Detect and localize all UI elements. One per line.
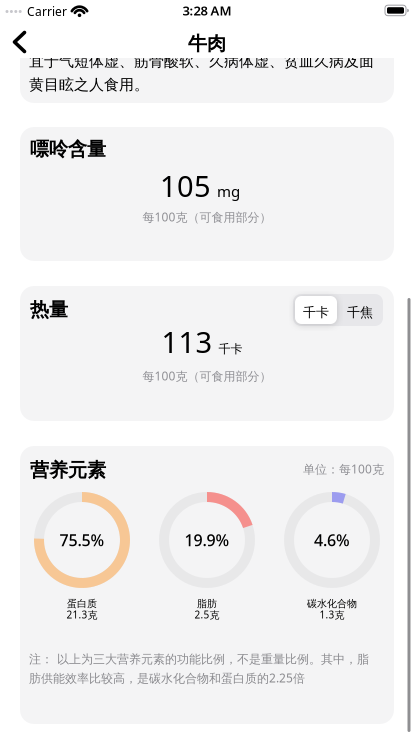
- staticText: 4.6%: [314, 529, 350, 551]
- staticText: 牛肉: [188, 32, 226, 55]
- button[interactable]: 千卡: [295, 296, 337, 324]
- staticText: mg: [217, 181, 240, 201]
- button[interactable]: 千焦: [337, 296, 383, 324]
- staticText: 肪供能效率比较高，是碳水化合物和蛋白质的2.25倍: [29, 670, 305, 686]
- staticText: 105: [160, 166, 211, 205]
- staticText: 113: [161, 322, 212, 361]
- staticText: 脂肪: [197, 597, 217, 610]
- staticText: 宜于气短体虚、筋骨酸软、久病体虚、贫血久病及面: [29, 52, 374, 70]
- staticText: 19.9%: [184, 529, 229, 551]
- staticText: 千卡: [303, 304, 329, 320]
- button[interactable]: Back: [6, 28, 42, 56]
- staticText: 营养元素: [30, 458, 106, 482]
- staticText: Carrier: [27, 3, 67, 19]
- staticText: 嘌呤含量: [30, 137, 106, 161]
- staticText: 每100克（可食用部分）: [142, 368, 271, 384]
- staticText: 注： 以上为三大营养元素的功能比例，不是重量比例。其中，脂: [29, 652, 369, 667]
- staticText: 蛋白质: [67, 597, 97, 610]
- staticText: 75.5%: [59, 529, 104, 551]
- staticText: 碳水化合物: [307, 597, 357, 610]
- staticText: 千焦: [347, 304, 373, 320]
- staticText: 3:28 AM: [182, 2, 231, 19]
- staticText: 单位：每100克: [303, 461, 384, 477]
- staticText: 21.3克: [66, 608, 97, 621]
- staticText: 热量: [30, 298, 68, 321]
- staticText: 每100克（可食用部分）: [142, 209, 271, 225]
- staticText: 黄目眩之人食用。: [29, 75, 149, 94]
- staticText: 2.5克: [194, 608, 219, 621]
- staticText: 千卡: [218, 342, 242, 356]
- staticText: 1.3克: [319, 608, 344, 621]
